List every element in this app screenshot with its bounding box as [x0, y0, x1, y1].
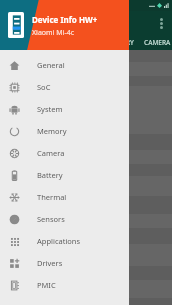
staticText: cc version [6, 100, 32, 107]
staticText: Drivers [37, 258, 63, 268]
staticText: Applications [37, 236, 81, 246]
staticText: Xiaomi Mi-4c [32, 28, 75, 38]
staticText: 40827 [6, 107, 22, 114]
button[interactable]: System [0, 98, 129, 120]
button[interactable]: More options [154, 16, 168, 30]
button[interactable] [0, 50, 172, 62]
button[interactable] [0, 196, 172, 214]
button[interactable]: Drivers [0, 252, 129, 274]
staticText: Sensors [37, 214, 65, 224]
staticText: System [37, 104, 63, 114]
button[interactable] [0, 214, 172, 228]
button[interactable]: General [0, 54, 129, 76]
button[interactable]: SoC [0, 76, 129, 98]
button[interactable]: PMIC [0, 274, 129, 296]
button[interactable] [0, 76, 172, 86]
button[interactable] [0, 280, 172, 298]
staticText: General [37, 60, 65, 70]
staticText: 2016 [6, 128, 21, 134]
button[interactable]: Memory [0, 120, 129, 142]
button[interactable]: RY [126, 38, 134, 47]
button[interactable] [0, 228, 172, 244]
staticText: PMIC [37, 280, 56, 290]
button[interactable] [0, 134, 172, 150]
button[interactable] [0, 62, 172, 76]
staticText: Memory [37, 126, 67, 136]
button[interactable]: 0.49-perf- [0, 86, 172, 134]
staticText: C) ) #1 [6, 114, 23, 121]
staticText: Thermal [37, 192, 67, 202]
button[interactable] [0, 244, 172, 266]
button[interactable]: Camera [0, 142, 129, 164]
staticText: 0.49-perf- [6, 86, 32, 93]
staticText: 2_1080P_ [4, 154, 28, 161]
staticText: Camera [37, 148, 65, 158]
button[interactable] [0, 266, 172, 280]
button[interactable]: 2_1080P_ [0, 150, 172, 164]
button[interactable]: Applications [0, 230, 129, 252]
button[interactable]: Sensors [0, 208, 129, 230]
staticText: Battery [37, 170, 63, 180]
staticText: Device Info HW+ [32, 14, 98, 25]
button[interactable]: CAMERA [144, 38, 171, 47]
staticText: SoC [37, 82, 51, 92]
button[interactable] [0, 298, 172, 305]
button[interactable]: Thermal [0, 186, 129, 208]
button[interactable] [0, 164, 172, 176]
button[interactable] [0, 176, 172, 196]
button[interactable]: Battery [0, 164, 129, 186]
